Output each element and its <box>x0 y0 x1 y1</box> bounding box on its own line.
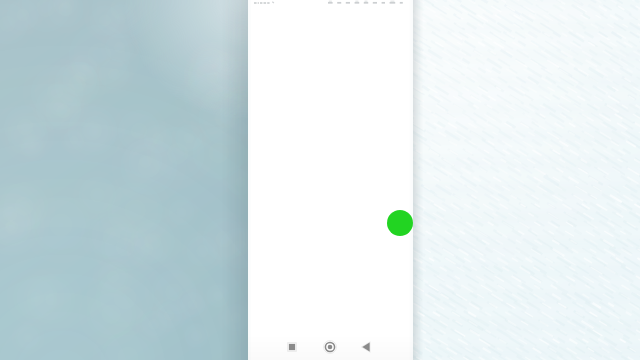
button[interactable]: Recent apps <box>280 337 304 357</box>
button[interactable]: Back <box>354 337 378 357</box>
button[interactable]: Home <box>318 337 342 357</box>
button[interactable]: Add <box>387 210 413 236</box>
